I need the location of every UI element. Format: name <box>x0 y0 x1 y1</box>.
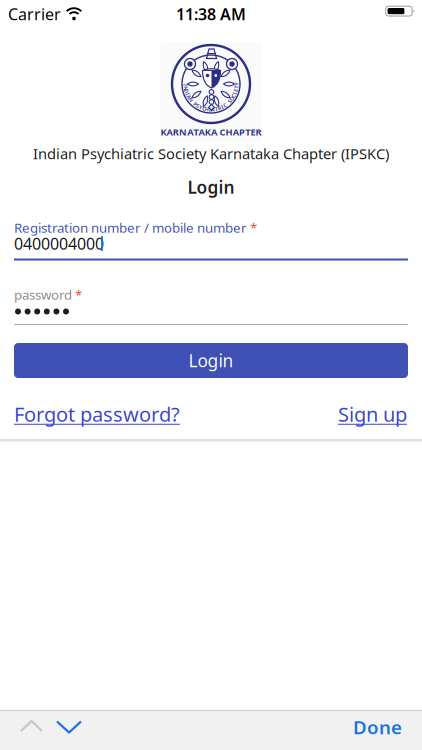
staticText: S <box>228 98 231 105</box>
staticText: 0400004000 <box>14 233 104 254</box>
staticText: C <box>202 105 205 112</box>
staticText: Indian Psychiatric Society Karnataka Cha… <box>33 144 389 163</box>
staticText: N <box>189 96 193 103</box>
staticText: S <box>196 102 199 109</box>
staticText: KARNATAKA CHAPTER <box>160 126 262 138</box>
staticText: D <box>184 88 188 95</box>
staticText: I <box>187 91 189 98</box>
button[interactable]: Login <box>14 343 408 378</box>
staticText: Sign up <box>338 401 407 427</box>
staticText: •••••• <box>14 300 50 322</box>
staticText: Y <box>235 80 238 87</box>
staticText <box>192 98 193 105</box>
staticText: Done <box>353 715 402 739</box>
staticText: I <box>209 106 211 113</box>
button[interactable]: Next field <box>56 719 82 734</box>
staticText: T <box>215 105 218 112</box>
button[interactable]: Sign up <box>338 401 407 427</box>
staticText: N <box>184 84 188 92</box>
button[interactable]: Done <box>353 715 402 739</box>
staticText: I <box>234 90 236 97</box>
staticText: R <box>218 105 221 112</box>
staticText: Forgot password? <box>14 401 180 427</box>
staticText: Carrier <box>8 3 61 25</box>
staticText: E <box>234 87 237 94</box>
staticText: * <box>250 219 257 236</box>
staticText: 11:38 AM <box>176 3 246 25</box>
staticText: C <box>232 92 235 100</box>
staticText: P <box>194 100 197 108</box>
staticText: A <box>211 106 215 113</box>
staticText: A <box>187 93 191 100</box>
staticText: Registration number / mobile number <box>14 219 247 236</box>
staticText: H <box>205 106 209 113</box>
button[interactable]: Previous field <box>20 719 43 733</box>
staticText: Login <box>187 175 234 198</box>
staticText: 0400004000 <box>14 233 104 255</box>
staticText: I <box>221 103 223 110</box>
staticText: Y <box>199 104 202 111</box>
secureTextField[interactable]: 123456 <box>14 300 408 322</box>
textField[interactable]: 0400004000 <box>14 233 408 255</box>
staticText: C <box>223 102 226 109</box>
staticText: I <box>184 81 186 88</box>
staticText <box>227 100 228 107</box>
staticText: password <box>14 286 72 303</box>
staticText: T <box>235 83 238 91</box>
staticText: Login <box>188 349 233 372</box>
staticText: * <box>75 286 82 303</box>
staticText: O <box>230 95 234 102</box>
button[interactable]: Forgot password? <box>14 401 180 427</box>
